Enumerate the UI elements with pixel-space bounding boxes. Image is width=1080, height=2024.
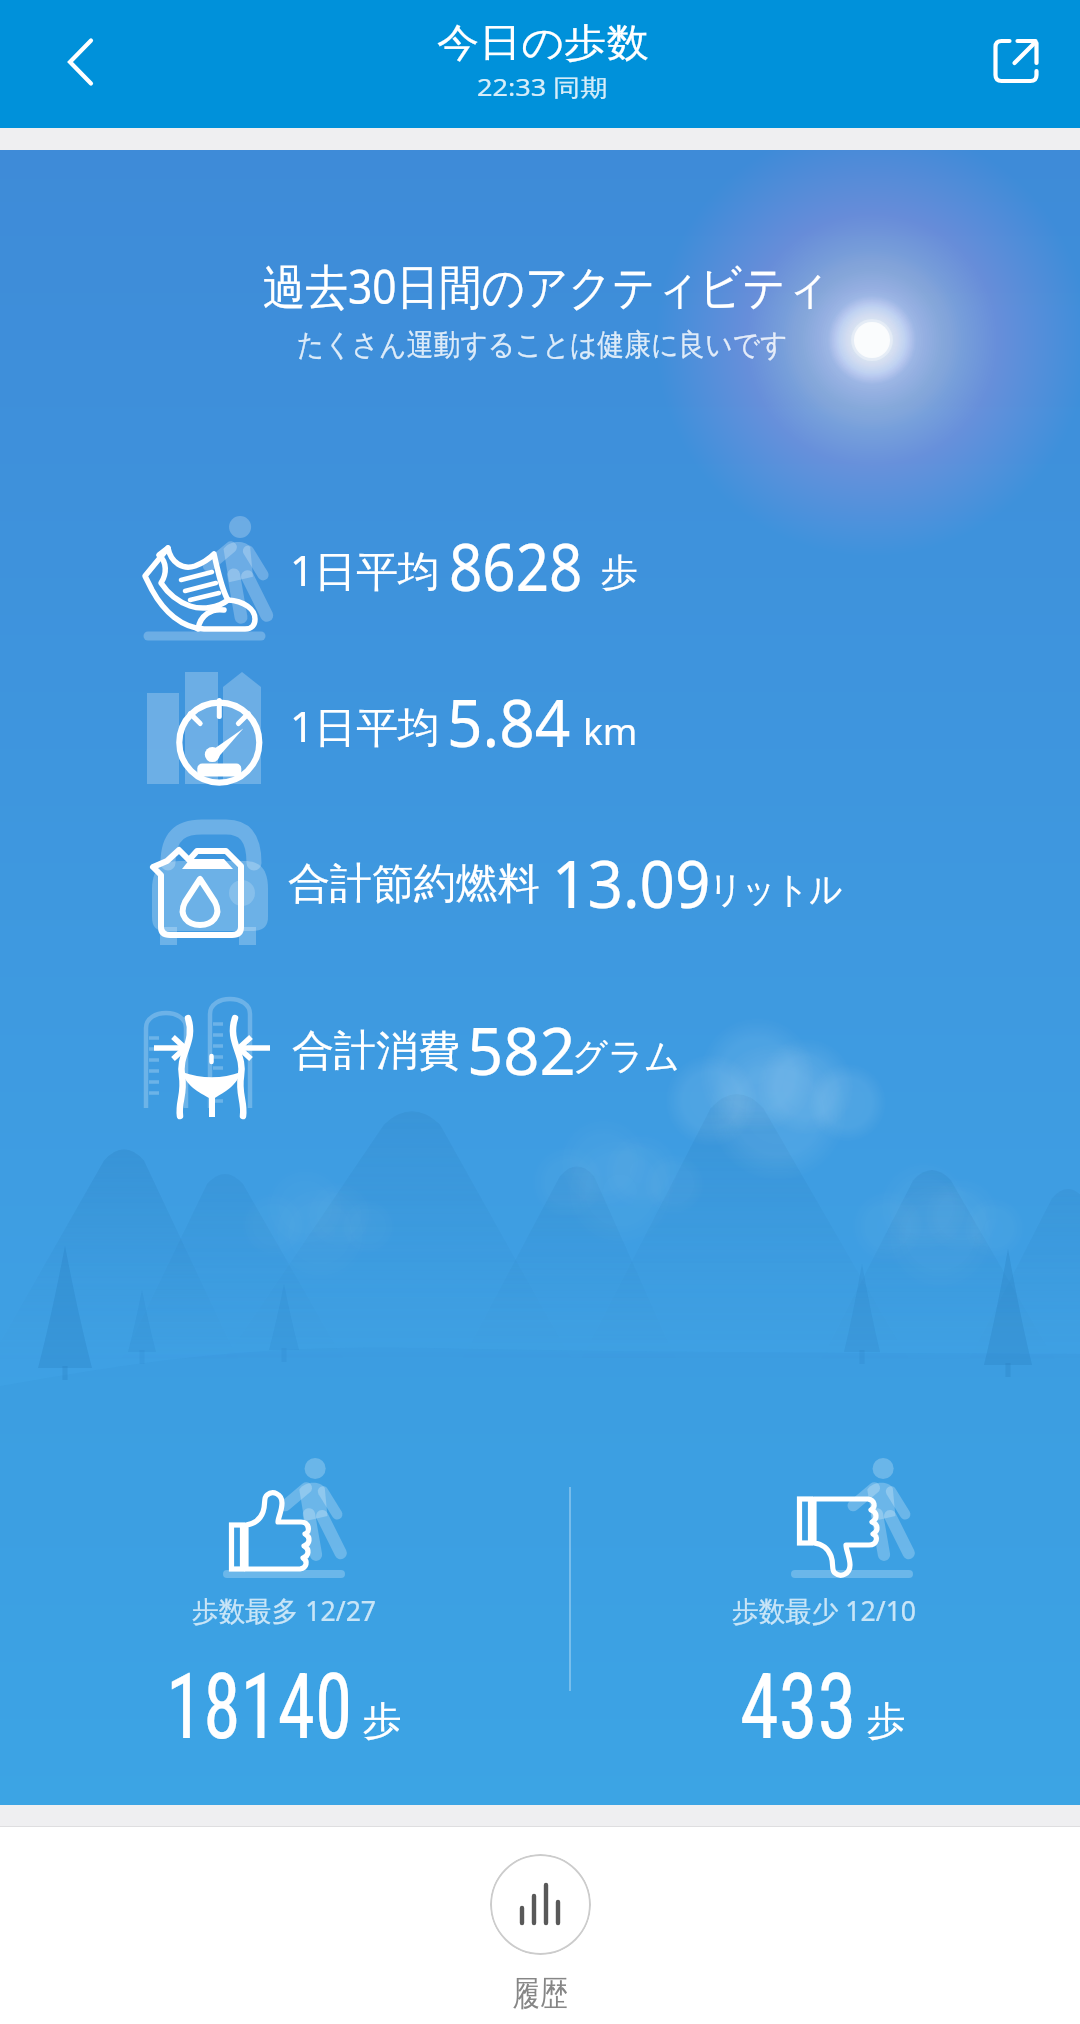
button[interactable]: 履歴 (0, 1827, 1080, 2015)
staticText: 18140 (166, 1654, 352, 1761)
staticText: 5.84 (447, 676, 570, 766)
staticText: 433 (740, 1654, 856, 1761)
staticText: 合計節約燃料 (288, 858, 540, 911)
staticText: 合計消費 (292, 1025, 460, 1078)
button[interactable]: Share (981, 26, 1051, 96)
staticText: 歩数最多 12/27 (192, 1591, 376, 1629)
staticText: 履歴 (512, 1972, 568, 2015)
staticText: 8628 (449, 520, 583, 610)
staticText: リットル (709, 866, 843, 913)
staticText: 歩 (867, 1696, 906, 1745)
staticText: 22:33 同期 (477, 70, 608, 103)
staticText: 1日平均 (290, 541, 441, 598)
staticText: 歩 (363, 1696, 402, 1745)
staticText: 今日の歩数 (437, 18, 649, 67)
staticText: たくさん運動することは健康に良いです (297, 326, 788, 364)
staticText: 歩 (601, 549, 638, 596)
staticText: グラム (572, 1033, 680, 1080)
staticText: 13.09 (552, 837, 711, 927)
button[interactable]: Back (45, 27, 115, 97)
staticText: 過去30日間のアクティビティ (263, 253, 829, 319)
staticText: km (583, 705, 638, 755)
staticText: 582 (467, 1004, 576, 1094)
staticText: 1日平均 (290, 697, 441, 754)
staticText: 歩数最少 12/10 (732, 1591, 916, 1629)
